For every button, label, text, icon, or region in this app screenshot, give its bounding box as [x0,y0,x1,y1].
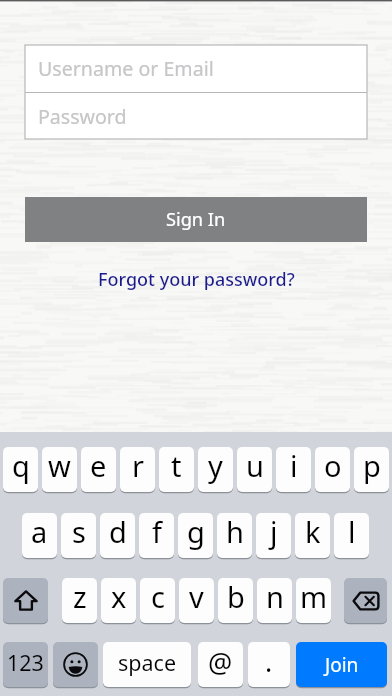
staticText: d [109,513,127,551]
button[interactable]: . [248,642,290,687]
button[interactable]: n [257,578,292,623]
button[interactable]: j [256,513,291,558]
staticText: a [31,513,48,551]
button[interactable]: v [179,578,214,623]
staticText: i [290,447,298,485]
button[interactable]: Shift [3,578,48,623]
staticText: y [208,447,223,485]
staticText: t [171,447,182,485]
button[interactable]: Password [25,93,367,139]
button[interactable]: h [217,513,252,558]
button[interactable]: @ [198,642,243,687]
staticText: k [305,513,321,551]
button[interactable]: Sign In [25,197,367,242]
staticText: h [226,513,244,551]
staticText: e [90,447,107,485]
button[interactable]: Emoji [53,642,98,687]
staticText: c [151,578,165,616]
button[interactable]: Join [296,642,387,687]
button[interactable]: r [120,447,155,492]
staticText: l [348,513,356,551]
button[interactable]: y [198,447,233,492]
staticText: p [363,447,381,485]
staticText: x [111,578,127,616]
staticText: n [266,578,284,616]
staticText: @ [208,644,233,681]
staticText: f [152,513,162,551]
button[interactable]: d [100,513,135,558]
button[interactable]: z [62,578,97,623]
staticText: z [73,578,87,616]
staticText: Forgot your password? [98,267,295,292]
button[interactable]: u [237,447,272,492]
staticText: b [227,578,245,616]
button[interactable]: e [81,447,116,492]
button[interactable]: t [159,447,194,492]
staticText: v [189,578,204,616]
staticText: Join [325,652,359,678]
button[interactable]: a [22,513,57,558]
staticText: o [324,447,342,485]
button[interactable]: g [178,513,213,558]
button[interactable]: p [354,447,389,492]
button[interactable]: x [101,578,136,623]
button[interactable]: i [276,447,311,492]
staticText: space [118,648,177,677]
staticText: w [48,447,71,485]
staticText: . [265,643,273,680]
staticText: g [187,513,205,551]
button[interactable]: Username or Email [25,45,367,92]
staticText: u [246,447,264,485]
staticText: r [132,447,144,485]
staticText: s [72,513,86,551]
staticText: m [300,578,328,616]
button[interactable]: q [3,447,38,492]
button[interactable]: w [42,447,77,492]
button[interactable]: o [315,447,350,492]
button[interactable]: m [296,578,331,623]
staticText: Password [38,103,127,130]
button[interactable]: Backspace [344,578,387,623]
button[interactable]: f [139,513,174,558]
staticText: Sign In [166,207,226,232]
button[interactable]: k [295,513,330,558]
button[interactable]: s [61,513,96,558]
button[interactable]: b [218,578,253,623]
staticText: j [270,513,278,551]
staticText: 123 [7,648,44,677]
staticText: q [12,447,30,485]
button[interactable]: space [103,642,191,687]
button[interactable]: 123 [3,642,48,687]
staticText: Username or Email [38,55,214,82]
button[interactable]: c [140,578,175,623]
button[interactable]: Forgot your password? [90,264,303,295]
button[interactable]: l [334,513,369,558]
